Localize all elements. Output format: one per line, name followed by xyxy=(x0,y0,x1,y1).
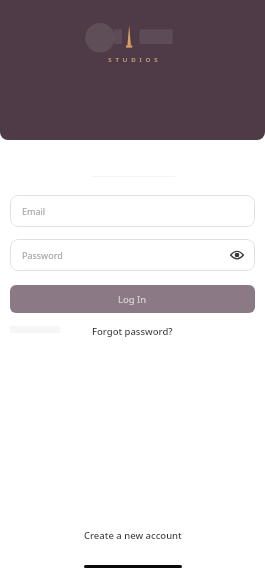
button[interactable]: Show password xyxy=(227,245,247,265)
staticText: Password xyxy=(22,249,227,261)
staticText: Log In xyxy=(118,293,147,306)
staticText: S T U D I O S xyxy=(108,56,159,64)
staticText: Forgot password? xyxy=(92,325,173,338)
staticText: Email xyxy=(22,205,46,217)
staticText: Create a new account xyxy=(84,529,182,542)
button[interactable]: Password xyxy=(10,239,255,271)
button[interactable]: Forgot password? xyxy=(86,323,179,340)
button[interactable]: Email xyxy=(10,195,255,227)
button[interactable]: Log In xyxy=(10,285,255,313)
button[interactable]: Create a new account xyxy=(76,526,190,545)
